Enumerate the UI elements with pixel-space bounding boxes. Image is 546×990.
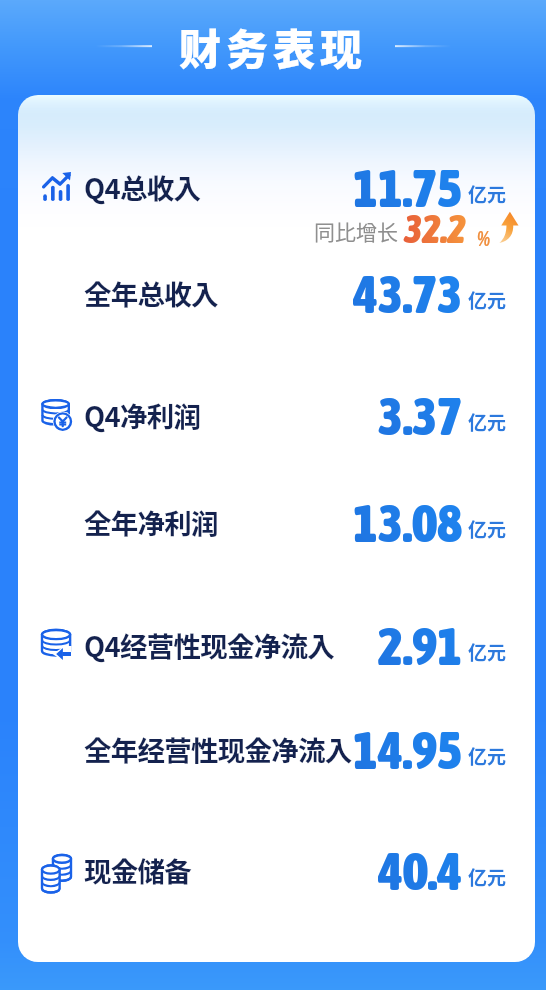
staticText: 全年经营性现金净流入 bbox=[84, 729, 352, 769]
staticText: 亿元 bbox=[468, 515, 507, 543]
staticText: 亿元 bbox=[468, 408, 507, 436]
staticText: 亿元 bbox=[468, 863, 507, 891]
staticText: 亿元 bbox=[468, 286, 507, 314]
staticText: Q4经营性现金净流入 bbox=[84, 625, 334, 665]
staticText: 亿元 bbox=[468, 180, 507, 208]
button[interactable]: 全年总收入 bbox=[18, 263, 535, 323]
staticText: 亿元 bbox=[468, 638, 507, 666]
button[interactable]: Q4经营性现金净流入 bbox=[18, 615, 535, 675]
staticText: 14.95 bbox=[353, 719, 463, 779]
staticText: Q4总收入 bbox=[84, 167, 201, 207]
staticText: 32.2 bbox=[404, 207, 466, 252]
staticText: 财务表现 bbox=[179, 16, 368, 77]
staticText: % bbox=[477, 226, 491, 250]
button[interactable]: 现金储备 bbox=[18, 840, 535, 900]
button[interactable]: Q4总收入 bbox=[18, 157, 535, 217]
button[interactable]: 全年经营性现金净流入 bbox=[18, 719, 535, 779]
staticText: 40.4 bbox=[378, 840, 463, 900]
staticText: Q4净利润 bbox=[84, 395, 201, 435]
staticText: 现金储备 bbox=[84, 850, 191, 890]
staticText: 13.08 bbox=[353, 492, 463, 552]
staticText: 全年总收入 bbox=[84, 273, 218, 313]
button[interactable]: 全年净利润 bbox=[18, 492, 535, 552]
staticText: 3.37 bbox=[378, 385, 463, 445]
staticText: 2.91 bbox=[378, 615, 463, 675]
staticText: 同比增长 bbox=[314, 216, 398, 246]
staticText: 亿元 bbox=[468, 742, 507, 770]
staticText: 全年净利润 bbox=[84, 502, 218, 542]
staticText: 11.75 bbox=[353, 157, 463, 217]
button[interactable]: Q4净利润 bbox=[18, 385, 535, 445]
staticText: 43.73 bbox=[353, 263, 463, 323]
